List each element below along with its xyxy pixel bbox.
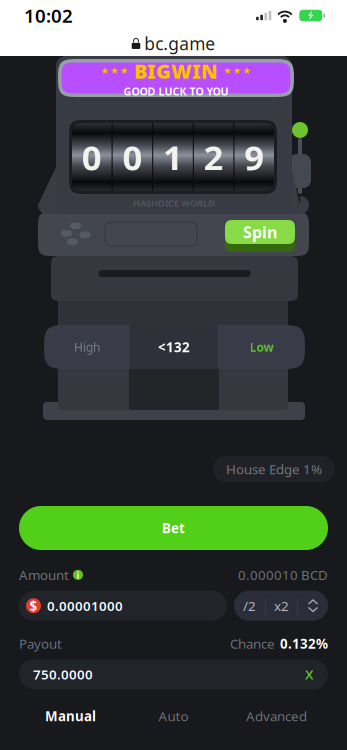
button[interactable]: House Edge 1% [213, 456, 335, 482]
staticText: Bet [162, 519, 185, 537]
staticText: Amount [19, 566, 69, 584]
staticText: 0 [82, 134, 102, 180]
staticText: 10:02 [24, 3, 73, 28]
button[interactable]: bc.game [0, 31, 347, 56]
staticText: Spin [243, 221, 277, 243]
staticText: <132 [158, 338, 190, 356]
staticText: 0.000010 BCD [238, 566, 328, 584]
button[interactable]: Bet [19, 506, 328, 550]
staticText: 0.132% [280, 635, 328, 652]
staticText: X [305, 666, 314, 683]
staticText: i [76, 569, 79, 581]
staticText: 750.0000 [33, 666, 93, 683]
staticText: x2 [274, 597, 289, 615]
staticText: 2 [204, 134, 224, 180]
staticText: 0.00001000 [47, 597, 123, 615]
staticText: GOOD LUCK TO YOU [123, 84, 228, 98]
button[interactable]: Advanced [225, 702, 328, 730]
button[interactable]: Adjust amount [298, 591, 328, 621]
staticText: /2 [243, 597, 256, 615]
button[interactable]: High [44, 325, 130, 369]
button[interactable]: Spin [225, 218, 295, 250]
staticText: $ [29, 597, 37, 615]
staticText: High [74, 339, 100, 355]
button[interactable]: x2 [266, 591, 297, 621]
button[interactable]: <132 [130, 325, 218, 369]
button[interactable]: Low [218, 325, 305, 369]
staticText: Low [249, 339, 273, 355]
staticText: HASHDICE WORLD [133, 197, 215, 209]
staticText: Auto [158, 707, 188, 725]
button[interactable]: Auto [122, 702, 225, 730]
button[interactable]: /2 [234, 591, 265, 621]
staticText: Advanced [246, 707, 307, 725]
staticText: Manual [45, 707, 96, 725]
staticText: House Edge 1% [226, 460, 322, 478]
staticText: Chance [230, 635, 275, 652]
staticText: 9 [244, 134, 264, 180]
staticText: Payout [19, 635, 62, 652]
staticText: 1 [163, 134, 183, 180]
staticText: BIGWIN [134, 58, 218, 84]
staticText: 0 [122, 134, 142, 180]
staticText: bc.game [144, 32, 215, 55]
button[interactable]: Manual [19, 702, 122, 730]
